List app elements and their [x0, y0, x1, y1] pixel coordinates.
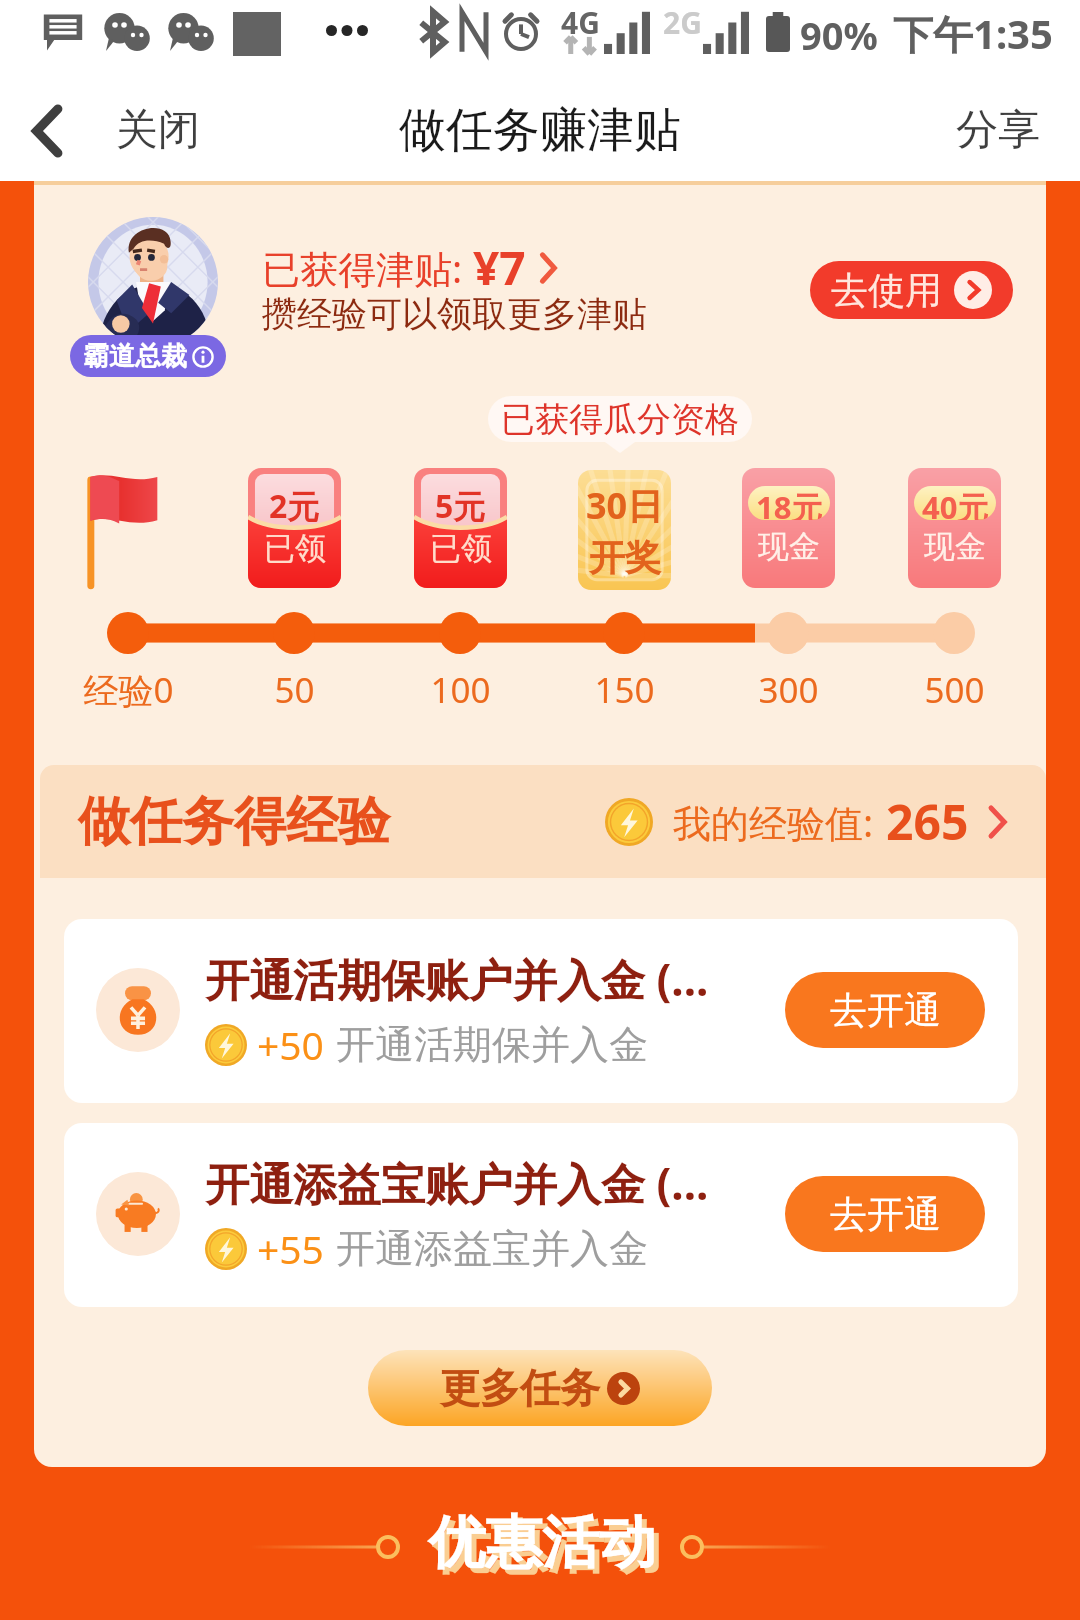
button[interactable]: Back	[0, 104, 218, 157]
staticText: 优惠活动	[433, 1512, 661, 1584]
staticText: 现金	[924, 527, 986, 566]
staticText: 更多任务	[440, 1363, 600, 1413]
staticText: 2G	[663, 2, 702, 43]
button[interactable]: 更多任务	[368, 1350, 712, 1426]
staticText: 经验0	[83, 666, 174, 714]
staticText: 40元	[922, 486, 989, 520]
staticText: 150	[594, 666, 655, 714]
staticText: 300	[758, 666, 819, 714]
button[interactable]: 开通添益宝账户并入金 (...	[64, 1123, 1018, 1307]
staticText: 去开通	[830, 1191, 941, 1238]
staticText: 做任务赚津贴	[399, 101, 681, 160]
staticText: 已领	[264, 529, 326, 568]
staticText: +55	[257, 1222, 324, 1275]
staticText: 攒经验可以领取更多津贴	[262, 292, 647, 336]
staticText: 去使用	[831, 267, 942, 314]
button[interactable]: 分享	[916, 104, 1080, 157]
staticText: 下午1:35	[893, 6, 1053, 61]
staticText: 90%	[800, 9, 878, 61]
staticText: 优惠活动	[428, 1507, 656, 1579]
staticText: 开通活期保并入金	[336, 1020, 648, 1069]
staticText: 关闭	[116, 104, 200, 157]
staticText: 4G	[561, 2, 600, 43]
staticText: 开通添益宝账户并入金 (...	[205, 1153, 709, 1213]
staticText: 分享	[956, 104, 1040, 157]
staticText: 做任务得经验	[78, 789, 390, 855]
staticText: 18元	[756, 486, 823, 520]
button[interactable]: 已获得津贴:	[262, 236, 556, 299]
button[interactable]: 我的经验值:	[605, 789, 1046, 854]
staticText: ¥7	[473, 236, 526, 299]
button[interactable]: 去开通	[785, 972, 985, 1048]
button[interactable]: 开通活期保账户并入金 (...	[64, 919, 1018, 1103]
staticText: 开奖	[589, 535, 661, 580]
staticText: 已获得津贴:	[262, 242, 473, 294]
staticText: 现金	[758, 527, 820, 566]
staticText: 100	[430, 666, 491, 714]
staticText: 265	[886, 789, 969, 854]
staticText: 5元	[435, 484, 486, 528]
other: Back	[34, 107, 60, 155]
staticText: 我的经验值:	[673, 796, 874, 848]
button[interactable]: 去使用	[810, 261, 1013, 319]
staticText: 已获得瓜分资格	[501, 398, 739, 441]
staticText: 50	[274, 666, 315, 714]
staticText: 霸道总裁	[83, 340, 187, 373]
staticText: 去开通	[830, 987, 941, 1034]
staticText: 开通添益宝并入金	[336, 1224, 648, 1273]
staticText: 30日	[586, 481, 664, 530]
staticText: +50	[257, 1018, 324, 1071]
staticText: 2元	[269, 484, 320, 528]
staticText: 开通活期保账户并入金 (...	[205, 949, 709, 1009]
staticText: 500	[924, 666, 985, 714]
staticText: 已领	[430, 529, 492, 568]
button[interactable]: 去开通	[785, 1176, 985, 1252]
